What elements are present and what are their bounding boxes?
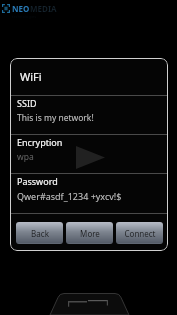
staticText: More	[80, 228, 100, 239]
staticText: wpa	[17, 151, 34, 163]
button[interactable]: More	[66, 222, 113, 244]
button[interactable]: Connect	[116, 222, 163, 244]
staticText: This is my network!	[17, 112, 94, 124]
staticText: Qwer#asdf_1234 +yxcv!$	[17, 190, 122, 202]
staticText: Back	[31, 228, 49, 239]
staticText: MEDIA	[30, 3, 57, 14]
staticText: SSID	[17, 97, 37, 109]
button[interactable]: Back	[16, 222, 63, 244]
staticText: Password	[17, 175, 58, 187]
staticText: Encryption	[17, 136, 63, 148]
staticText: NEO	[12, 3, 30, 14]
button[interactable]: Play	[76, 146, 105, 169]
staticText: Connect	[124, 228, 156, 239]
staticText: WiFi	[20, 69, 42, 84]
